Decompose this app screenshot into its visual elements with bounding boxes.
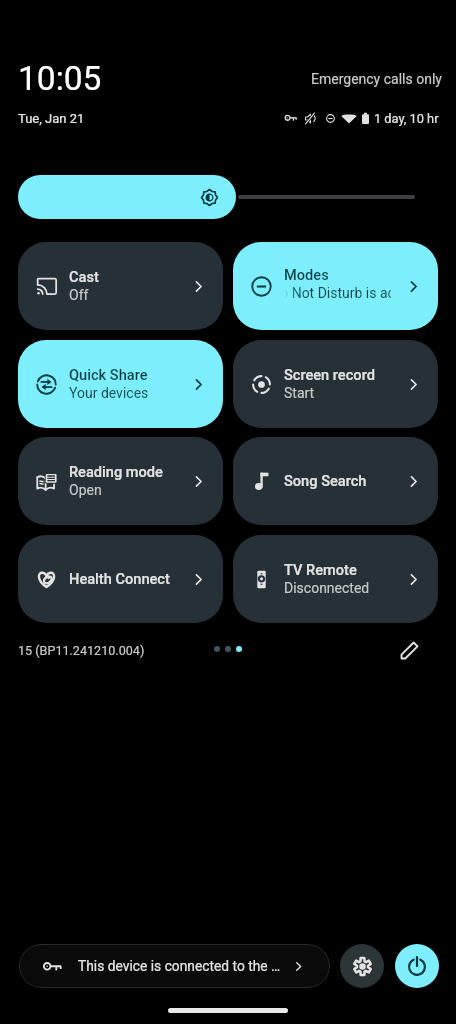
- staticText: Quick Share: [69, 366, 148, 383]
- button[interactable]: TV Remote: [233, 535, 438, 623]
- staticText: Do Not Disturb is active: [284, 285, 391, 301]
- staticText: Start: [284, 385, 315, 401]
- staticText: 1 day, 10 hr: [374, 111, 439, 126]
- staticText: Modes: [284, 266, 329, 283]
- staticText: Off: [69, 287, 89, 303]
- button[interactable]: Quick Share: [18, 340, 223, 428]
- button[interactable]: This device is connected to the …: [19, 944, 330, 988]
- staticText: Open: [69, 482, 102, 498]
- staticText: TV Remote: [284, 561, 357, 578]
- staticText: Disconnected: [284, 580, 370, 596]
- staticText: Your devices: [69, 385, 149, 401]
- button[interactable]: Edit tiles: [393, 634, 425, 666]
- staticText: Tue, Jan 21: [18, 111, 85, 126]
- button[interactable]: Brightness: [18, 175, 236, 219]
- button[interactable]: Screen record: [233, 340, 438, 428]
- staticText: 10:05: [18, 59, 102, 98]
- button[interactable]: Settings: [340, 944, 384, 988]
- button[interactable]: Reading mode: [18, 437, 223, 525]
- button[interactable]: Cast: [18, 242, 223, 330]
- staticText: This device is connected to the …: [78, 958, 293, 974]
- staticText: 15 (BP11.241210.004): [18, 643, 145, 658]
- staticText: Reading mode: [69, 463, 163, 480]
- button[interactable]: Song Search: [233, 437, 438, 525]
- button[interactable]: Power: [395, 944, 439, 988]
- staticText: Cast: [69, 268, 99, 285]
- button[interactable]: Modes: [233, 242, 438, 330]
- staticText: Health Connect: [69, 570, 170, 587]
- staticText: Emergency calls only: [311, 71, 442, 87]
- staticText: Screen record: [284, 366, 375, 383]
- button[interactable]: Health Connect: [18, 535, 223, 623]
- staticText: Song Search: [284, 472, 367, 489]
